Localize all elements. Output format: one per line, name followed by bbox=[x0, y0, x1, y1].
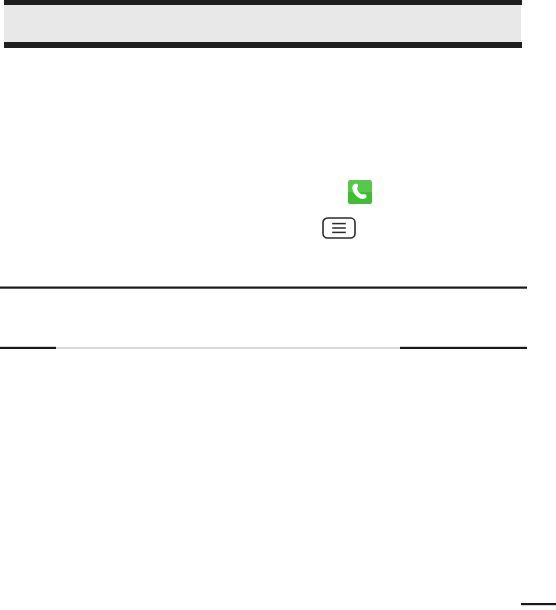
button[interactable]: Menu bbox=[322, 217, 356, 239]
button[interactable]: Call bbox=[348, 180, 372, 204]
button[interactable]: Header banner bbox=[0, 0, 556, 49]
